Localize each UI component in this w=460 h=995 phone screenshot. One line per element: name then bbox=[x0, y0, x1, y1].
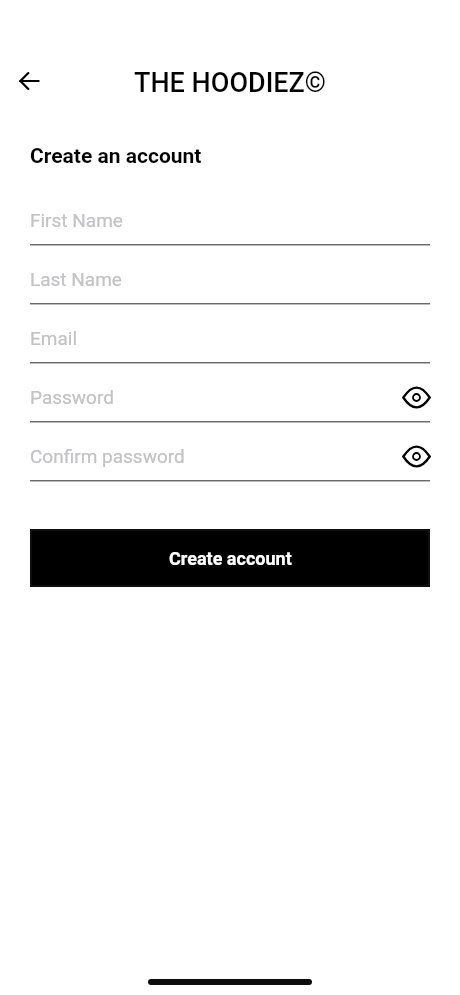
button[interactable]: Create account bbox=[30, 529, 430, 587]
staticText: THE HOODIEZ© bbox=[134, 67, 327, 99]
staticText: First Name bbox=[30, 209, 123, 231]
staticText: Password bbox=[30, 386, 114, 408]
staticText: Last Name bbox=[30, 268, 122, 290]
button[interactable]: Show password bbox=[399, 439, 434, 474]
staticText: Create account bbox=[169, 548, 292, 569]
button[interactable]: Back bbox=[10, 61, 50, 101]
staticText: Email bbox=[30, 327, 78, 349]
staticText: Create an account bbox=[30, 144, 202, 169]
button[interactable]: Show password bbox=[399, 380, 434, 415]
staticText: Confirm password bbox=[30, 445, 185, 467]
